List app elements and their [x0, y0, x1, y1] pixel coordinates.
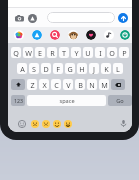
- button[interactable]: G: [65, 63, 75, 74]
- button[interactable]: I: [95, 47, 105, 58]
- button[interactable]: P: [119, 47, 129, 58]
- button[interactable]: O: [107, 47, 117, 58]
- button[interactable]: W: [23, 47, 33, 58]
- staticText: N: [89, 80, 95, 90]
- staticText: O: [109, 48, 115, 58]
- staticText: W: [25, 48, 32, 58]
- button[interactable]: Go: [108, 95, 132, 106]
- button[interactable]: V: [63, 79, 73, 90]
- staticText: C: [54, 80, 59, 90]
- button[interactable]: Send: [118, 13, 128, 23]
- staticText: A: [20, 64, 25, 74]
- staticText: P: [122, 48, 127, 58]
- staticText: J: [93, 64, 95, 74]
- staticText: X: [42, 80, 47, 90]
- button[interactable]: App 3: [46, 27, 64, 43]
- staticText: Z: [30, 80, 35, 90]
- button[interactable]: [47, 12, 115, 23]
- button[interactable]: Emoji keyboard: [16, 118, 27, 129]
- button[interactable]: space: [27, 95, 106, 106]
- button[interactable]: B: [75, 79, 85, 90]
- button[interactable]: App 7: [118, 27, 132, 43]
- staticText: S: [32, 64, 36, 74]
- button[interactable]: Q: [11, 47, 21, 58]
- staticText: R: [50, 48, 55, 58]
- staticText: B: [78, 80, 83, 90]
- button[interactable]: F: [53, 63, 63, 74]
- button[interactable]: App 4: [64, 27, 82, 43]
- button[interactable]: Emoji: [52, 119, 61, 128]
- staticText: D: [43, 64, 49, 74]
- staticText: U: [85, 48, 91, 58]
- button[interactable]: [111, 79, 125, 90]
- button[interactable]: A: [17, 63, 27, 74]
- staticText: space: [59, 97, 75, 105]
- staticText: 123: [14, 97, 23, 104]
- button[interactable]: [11, 79, 25, 90]
- button[interactable]: T: [59, 47, 69, 58]
- button[interactable]: N: [87, 79, 97, 90]
- button[interactable]: L: [113, 63, 123, 74]
- staticText: Go: [116, 97, 124, 105]
- button[interactable]: J: [89, 63, 99, 74]
- button[interactable]: K: [101, 63, 111, 74]
- button[interactable]: E: [35, 47, 45, 58]
- button[interactable]: App 2: [28, 27, 46, 43]
- button[interactable]: X: [39, 79, 49, 90]
- staticText: Y: [74, 48, 79, 58]
- button[interactable]: App 5: [82, 27, 100, 43]
- staticText: E: [38, 48, 42, 58]
- button[interactable]: Dictation: [118, 118, 129, 129]
- button[interactable]: D: [41, 63, 51, 74]
- button[interactable]: S: [29, 63, 39, 74]
- staticText: H: [79, 64, 85, 74]
- staticText: T: [62, 48, 66, 58]
- button[interactable]: H: [77, 63, 87, 74]
- staticText: I: [99, 48, 102, 58]
- button[interactable]: Y: [71, 47, 81, 58]
- staticText: F: [56, 64, 60, 74]
- button[interactable]: M: [99, 79, 109, 90]
- staticText: Q: [13, 48, 19, 58]
- button[interactable]: App 6: [100, 27, 118, 43]
- button[interactable]: R: [47, 47, 57, 58]
- button[interactable]: Camera: [13, 12, 25, 24]
- button[interactable]: 123: [11, 95, 25, 106]
- button[interactable]: U: [83, 47, 93, 58]
- button[interactable]: Emoji: [63, 119, 72, 128]
- button[interactable]: C: [51, 79, 61, 90]
- staticText: V: [66, 80, 71, 90]
- button[interactable]: Emoji: [30, 119, 39, 128]
- button[interactable]: Z: [27, 79, 37, 90]
- button[interactable]: App Store: [26, 12, 38, 24]
- staticText: K: [104, 64, 109, 74]
- button[interactable]: App 1: [10, 27, 28, 43]
- button[interactable]: Emoji: [41, 119, 50, 128]
- staticText: M: [101, 80, 108, 90]
- staticText: G: [67, 64, 73, 74]
- staticText: L: [116, 64, 120, 74]
